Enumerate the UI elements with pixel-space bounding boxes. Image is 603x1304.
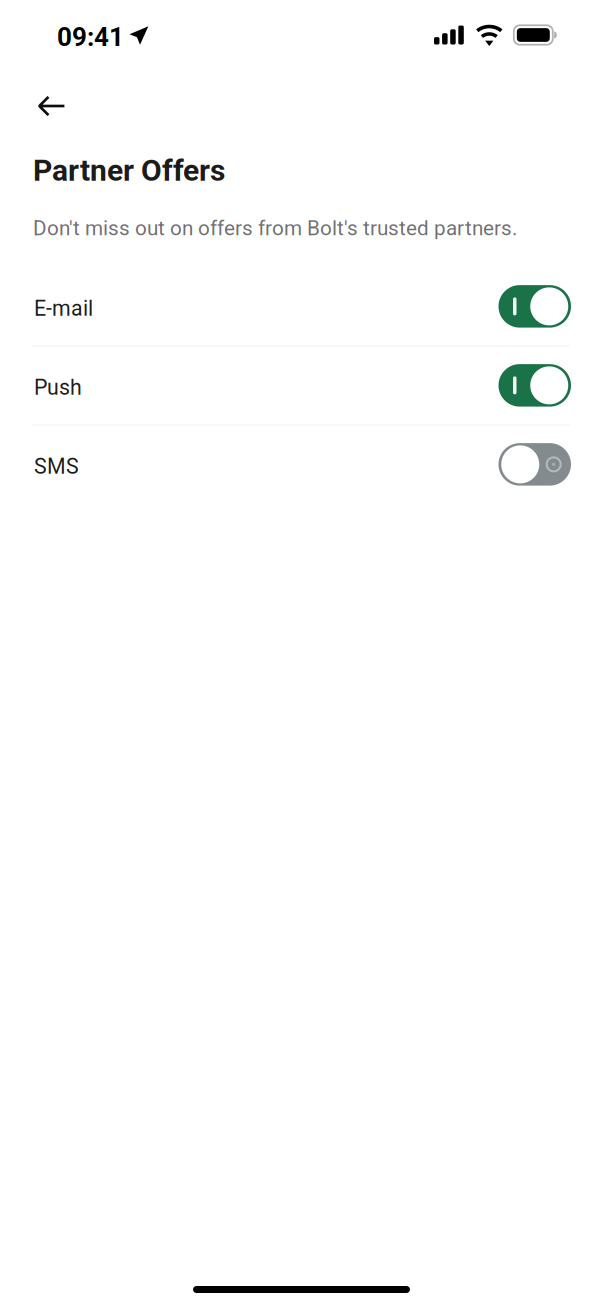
staticText: Partner Offers (33, 153, 225, 188)
button[interactable]: Push (0, 346, 603, 424)
button[interactable]: SMS (0, 425, 603, 503)
staticText: SMS (34, 454, 79, 479)
staticText: Don't miss out on offers from Bolt's tru… (33, 216, 517, 240)
staticText: Push (34, 375, 82, 400)
button[interactable]: E-mail (0, 267, 603, 345)
button[interactable]: Back (0, 70, 150, 142)
staticText: 09:41 (57, 22, 124, 52)
staticText: E-mail (34, 296, 93, 321)
